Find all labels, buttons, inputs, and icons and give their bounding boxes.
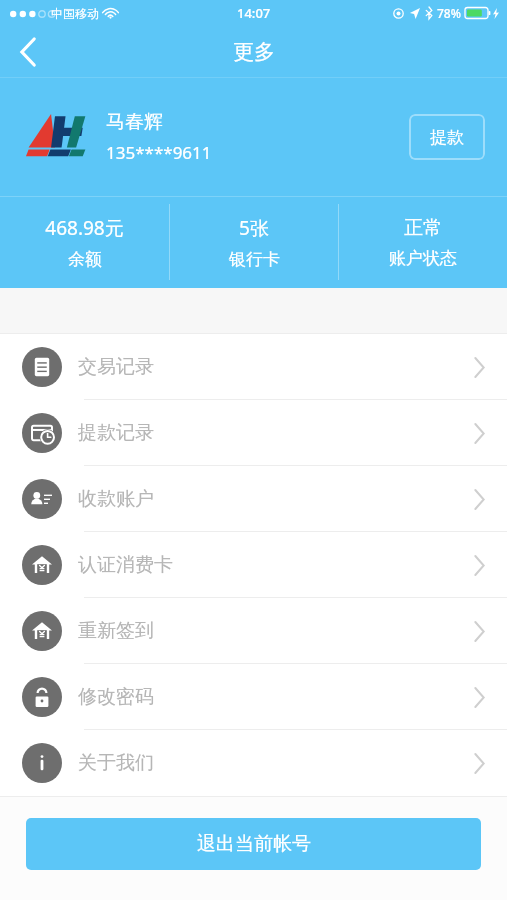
button[interactable]: 重新签到 [0, 598, 507, 664]
button[interactable]: 提款 [409, 114, 485, 160]
staticText: 更多 [233, 39, 275, 65]
staticText: 提款记录 [78, 421, 154, 445]
staticText: 468.98元 [45, 215, 124, 241]
staticText: 账户状态 [389, 248, 457, 269]
staticText: 5张 [239, 215, 269, 241]
staticText: 马春辉 [106, 110, 163, 134]
staticText: 修改密码 [78, 685, 154, 709]
staticText: 78% [437, 5, 461, 21]
staticText: 正常 [404, 216, 442, 240]
button[interactable]: 提款记录 [0, 400, 507, 466]
button[interactable]: 关于我们 [0, 730, 507, 796]
button[interactable]: 退出当前帐号 [26, 818, 481, 870]
button[interactable]: 收款账户 [0, 466, 507, 532]
staticText: 135****9611 [106, 141, 212, 164]
button[interactable]: Back [6, 30, 50, 74]
staticText: 认证消费卡 [78, 553, 173, 577]
staticText: 收款账户 [78, 487, 154, 511]
button[interactable]: 认证消费卡 [0, 532, 507, 598]
button[interactable]: 正常 [339, 196, 507, 288]
button[interactable]: 468.98元 [0, 196, 169, 288]
staticText: 提款 [430, 127, 464, 148]
button[interactable]: 交易记录 [0, 334, 507, 400]
staticText: 14:07 [237, 4, 271, 22]
staticText: 中国移动 [51, 6, 99, 21]
staticText: 退出当前帐号 [197, 832, 311, 856]
button[interactable]: 修改密码 [0, 664, 507, 730]
staticText: 交易记录 [78, 355, 154, 379]
button[interactable]: 5张 [170, 196, 338, 288]
staticText: 重新签到 [78, 619, 154, 643]
staticText: 余额 [68, 249, 102, 270]
staticText: 关于我们 [78, 751, 154, 775]
staticText: 银行卡 [229, 249, 280, 270]
